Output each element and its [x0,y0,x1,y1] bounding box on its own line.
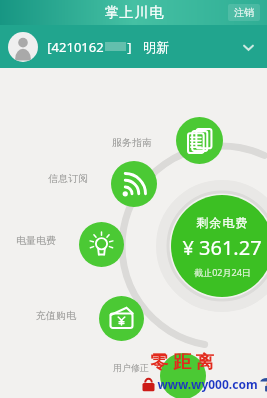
button[interactable]: 信息订阅 [111,161,157,207]
staticText: ¥ 361.27 [182,234,262,261]
button[interactable]: 注销 [228,4,260,21]
staticText: [4210162 [47,38,104,56]
staticText: 注销 [234,6,254,19]
button[interactable]: 剩余电费 [171,195,267,297]
staticText: www.wy000.com [157,376,258,392]
button[interactable]: Select account [237,36,259,58]
staticText: 掌上川电 [104,4,164,22]
button[interactable]: 服务指南 [176,117,223,164]
button[interactable]: 掌上川电 [104,4,164,22]
staticText: 剩余电费 [196,215,248,230]
staticText: ] [127,38,132,56]
staticText: 明新 [143,39,169,55]
staticText: 用户修正 [113,362,149,373]
staticText: 截止02月24日 [194,266,251,278]
button[interactable]: 电量电费 [79,222,124,267]
staticText: 服务指南 [112,136,152,149]
staticText: 零 距 离 [150,349,214,374]
staticText: 信息订阅 [48,172,88,185]
button[interactable]: [4210162 [0,25,267,68]
staticText: 充值购电 [36,309,76,322]
button[interactable]: 用户修正 [160,353,206,398]
button[interactable]: 充值购电 [99,296,144,341]
staticText: 电量电费 [16,234,56,247]
